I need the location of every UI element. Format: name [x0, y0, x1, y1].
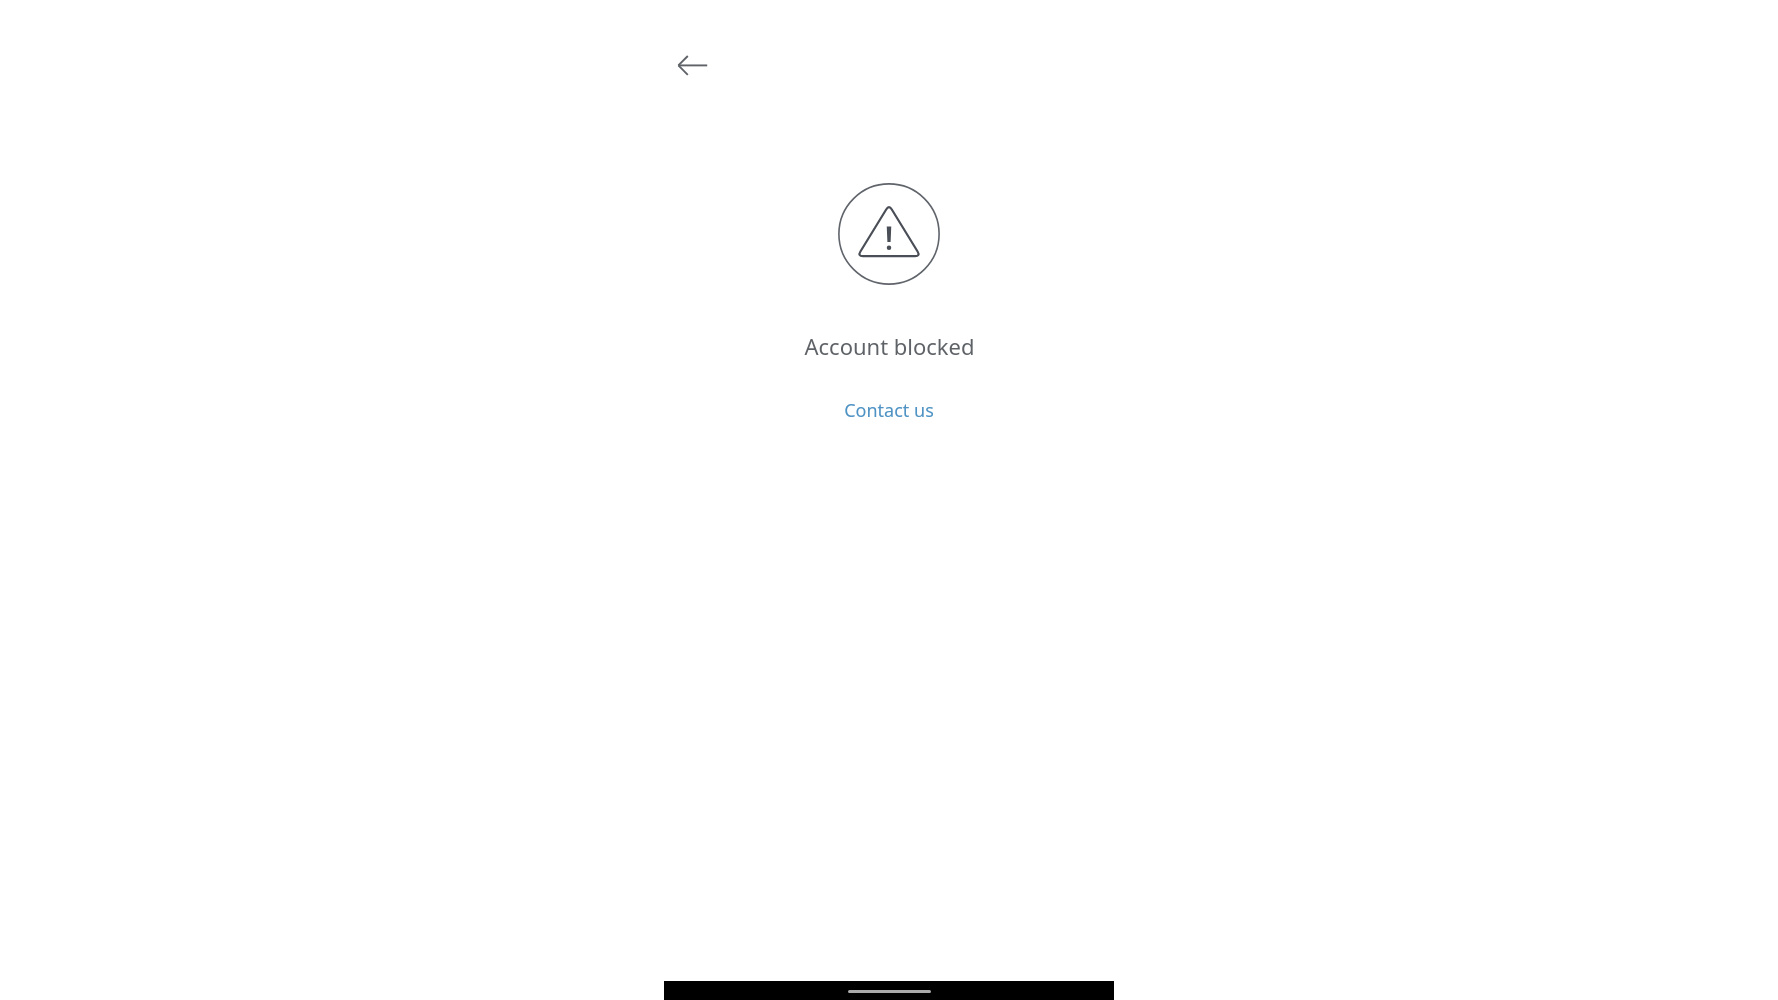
staticText: Contact us	[844, 398, 934, 423]
staticText: Account blocked	[804, 331, 975, 361]
button[interactable]: Contact us	[834, 394, 944, 427]
button[interactable]: Navigate back	[669, 41, 717, 89]
